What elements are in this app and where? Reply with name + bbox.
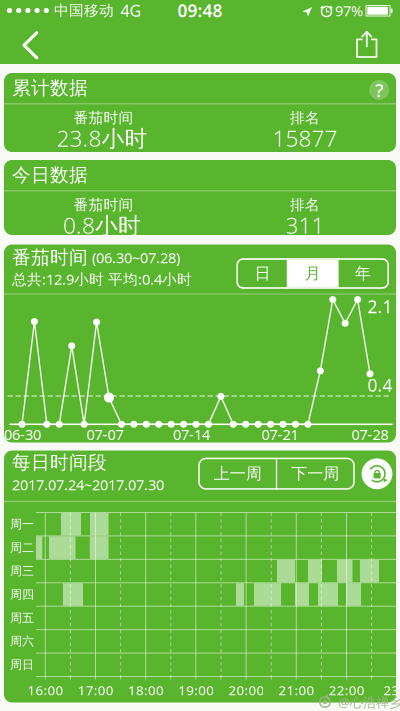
- staticText: 19:00: [178, 681, 214, 699]
- staticText: 17:00: [78, 681, 114, 699]
- button[interactable]: 上一周: [200, 459, 276, 489]
- staticText: (06.30~07.28): [92, 248, 180, 267]
- staticText: 23.8小时: [56, 123, 147, 153]
- button[interactable]: 年: [338, 259, 388, 288]
- button[interactable]: 下一周: [277, 459, 353, 489]
- staticText: 周六: [10, 634, 34, 649]
- staticText: 97%: [335, 1, 363, 20]
- staticText: 周四: [10, 587, 34, 602]
- staticText: 4G: [120, 0, 141, 21]
- staticText: 07-21: [261, 424, 298, 444]
- staticText: 0.4: [367, 373, 392, 396]
- staticText: 番茄时间: [12, 246, 88, 269]
- staticText: 09:48: [177, 0, 222, 22]
- staticText: 311: [285, 210, 324, 240]
- staticText: 下一周: [291, 464, 339, 483]
- button[interactable]: Rotate to landscape: [362, 458, 392, 489]
- staticText: 22:00: [329, 681, 365, 699]
- button[interactable]: Help: [369, 80, 389, 100]
- button[interactable]: Share: [345, 22, 389, 66]
- staticText: 排名: [290, 196, 320, 214]
- staticText: 年: [355, 264, 371, 283]
- staticText: 18:00: [128, 681, 164, 699]
- staticText: 排名: [290, 109, 320, 127]
- staticText: 周五: [10, 611, 34, 625]
- staticText: 21:00: [279, 681, 315, 699]
- staticText: 06-30: [4, 424, 41, 444]
- staticText: 周日: [10, 657, 34, 672]
- staticText: 中国移动: [54, 1, 114, 19]
- staticText: 07-07: [86, 424, 123, 444]
- staticText: 2017.07.24~2017.07.30: [12, 475, 164, 494]
- staticText: 23:00: [383, 681, 400, 699]
- staticText: 番茄时间: [73, 196, 133, 214]
- staticText: 番茄时间: [73, 109, 133, 127]
- button[interactable]: 月: [288, 259, 338, 288]
- staticText: 累计数据: [12, 76, 88, 99]
- staticText: 今日数据: [12, 163, 88, 186]
- staticText: 0.8小时: [63, 210, 141, 240]
- staticText: @心浩禅乡: [338, 693, 400, 711]
- staticText: 周二: [10, 540, 34, 555]
- staticText: 月: [305, 264, 321, 283]
- staticText: 07-14: [173, 424, 210, 444]
- staticText: 每日时间段: [12, 451, 107, 474]
- staticText: 16:00: [28, 681, 64, 699]
- staticText: 周三: [10, 564, 34, 578]
- staticText: 上一周: [214, 464, 262, 483]
- button[interactable]: Back: [8, 23, 52, 67]
- staticText: ?: [375, 78, 383, 102]
- staticText: 2.1: [367, 295, 392, 318]
- button[interactable]: 日: [237, 259, 287, 288]
- staticText: 15877: [272, 123, 337, 153]
- staticText: 20:00: [228, 681, 264, 699]
- staticText: 07-28: [351, 424, 388, 444]
- staticText: 日: [254, 264, 270, 283]
- staticText: 总共:12.9小时 平均:0.4小时: [12, 269, 192, 289]
- staticText: 周一: [10, 517, 34, 531]
